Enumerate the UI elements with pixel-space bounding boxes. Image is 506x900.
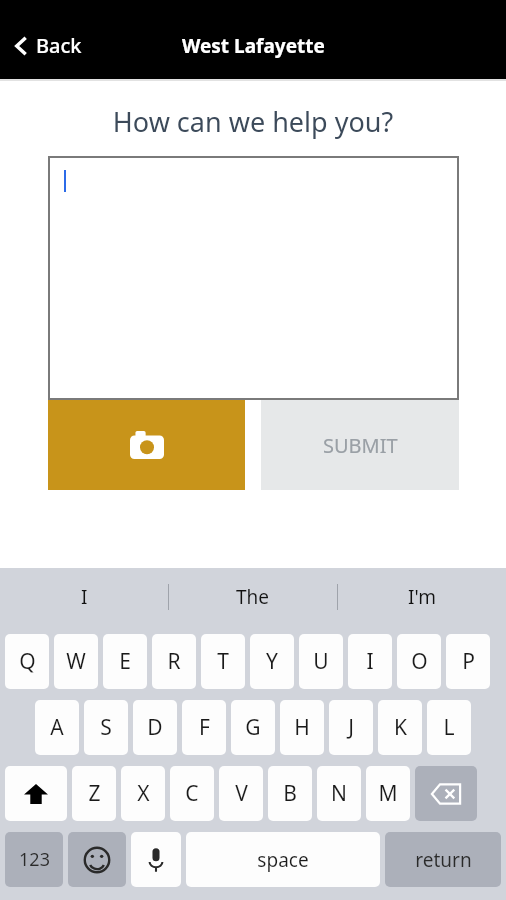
staticText: I — [81, 584, 88, 610]
button[interactable] — [50, 158, 457, 398]
button[interactable]: The — [168, 568, 337, 625]
staticText: I'm — [408, 584, 436, 610]
button[interactable]: N — [317, 766, 361, 821]
button[interactable]: Emoji — [68, 832, 126, 887]
staticText: SUBMIT — [323, 432, 398, 459]
staticText: Back — [36, 32, 82, 59]
staticText: X — [137, 779, 150, 808]
staticText: Q — [19, 647, 36, 676]
staticText: S — [100, 713, 112, 742]
staticText: D — [147, 713, 163, 742]
button[interactable]: 123 — [5, 832, 63, 887]
staticText: I — [366, 647, 374, 676]
button[interactable]: Back — [8, 26, 88, 65]
staticText: K — [394, 713, 407, 742]
button[interactable]: O — [397, 634, 441, 689]
button[interactable]: C — [170, 766, 214, 821]
staticText: B — [283, 779, 297, 808]
button[interactable]: F — [182, 700, 226, 755]
button[interactable]: I'm — [337, 568, 506, 625]
staticText: T — [217, 647, 229, 676]
staticText: N — [331, 779, 347, 808]
staticText: The — [236, 584, 270, 610]
staticText: Y — [266, 647, 278, 676]
staticText: West Lafayette — [182, 33, 325, 59]
button[interactable]: A — [35, 700, 79, 755]
staticText: H — [294, 713, 310, 742]
staticText: O — [411, 647, 428, 676]
staticText: W — [66, 647, 86, 676]
button[interactable]: G — [231, 700, 275, 755]
button[interactable]: Z — [72, 766, 116, 821]
button[interactable]: SUBMIT — [261, 400, 459, 490]
staticText: G — [245, 713, 261, 742]
staticText: V — [235, 779, 248, 808]
button[interactable]: Q — [5, 634, 49, 689]
button[interactable]: J — [329, 700, 373, 755]
button[interactable]: E — [103, 634, 147, 689]
button[interactable]: Take photo — [48, 400, 245, 490]
button[interactable]: B — [268, 766, 312, 821]
staticText: C — [185, 779, 199, 808]
button[interactable]: X — [121, 766, 165, 821]
staticText: A — [50, 713, 64, 742]
button[interactable]: space — [186, 832, 380, 887]
button[interactable]: L — [427, 700, 471, 755]
button[interactable]: W — [54, 634, 98, 689]
button[interactable]: I — [0, 568, 168, 625]
button[interactable]: U — [299, 634, 343, 689]
staticText: return — [415, 847, 472, 873]
button[interactable]: V — [219, 766, 263, 821]
staticText: How can we help you? — [0, 103, 506, 140]
button[interactable]: T — [201, 634, 245, 689]
button[interactable]: H — [280, 700, 324, 755]
staticText: Z — [88, 779, 101, 808]
button[interactable]: Shift — [5, 766, 67, 821]
staticText: F — [199, 713, 210, 742]
staticText: P — [462, 647, 475, 676]
button[interactable]: I — [348, 634, 392, 689]
staticText: 123 — [19, 847, 50, 872]
staticText: E — [119, 647, 131, 676]
button[interactable]: return — [385, 832, 501, 887]
button[interactable]: M — [366, 766, 410, 821]
staticText: R — [167, 647, 181, 676]
button[interactable]: K — [378, 700, 422, 755]
staticText: M — [378, 779, 398, 808]
button[interactable]: Backspace — [415, 766, 477, 821]
button[interactable]: P — [446, 634, 490, 689]
staticText: J — [348, 713, 354, 742]
button[interactable]: Voice input — [131, 832, 181, 887]
button[interactable]: D — [133, 700, 177, 755]
button[interactable]: S — [84, 700, 128, 755]
staticText: U — [313, 647, 329, 676]
button[interactable]: Y — [250, 634, 294, 689]
staticText: space — [257, 847, 309, 873]
button[interactable]: R — [152, 634, 196, 689]
staticText: L — [443, 713, 455, 742]
